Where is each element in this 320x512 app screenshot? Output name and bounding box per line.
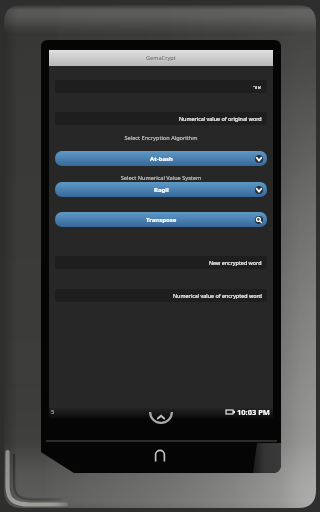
staticText: 10:03 PM (237, 407, 270, 417)
button[interactable]: Numerical value of original word (55, 112, 267, 125)
staticText: אור (253, 84, 262, 90)
staticText: Numerical value of original word (179, 115, 262, 122)
button[interactable]: Ragil (55, 182, 267, 197)
button[interactable]: Home (150, 447, 170, 465)
button[interactable]: At-bash (55, 151, 267, 166)
staticText: Select Numerical Value System (49, 174, 273, 182)
staticText: New encrypted word (209, 259, 262, 266)
staticText: Select Encryption Algorithm (49, 134, 273, 142)
staticText: Transpose (146, 216, 177, 224)
button[interactable]: אור (55, 80, 267, 93)
staticText: 5 (51, 408, 55, 416)
button[interactable]: Open quick settings (148, 410, 174, 424)
button[interactable]: Transpose (55, 212, 267, 227)
staticText: Ragil (154, 186, 169, 194)
staticText: GemaCrypt (146, 54, 176, 62)
button[interactable]: Numerical value of encrypted word (55, 289, 267, 302)
button[interactable]: New encrypted word (55, 256, 267, 269)
staticText: At-bash (150, 155, 173, 163)
staticText: Numerical value of encrypted word (173, 292, 262, 299)
